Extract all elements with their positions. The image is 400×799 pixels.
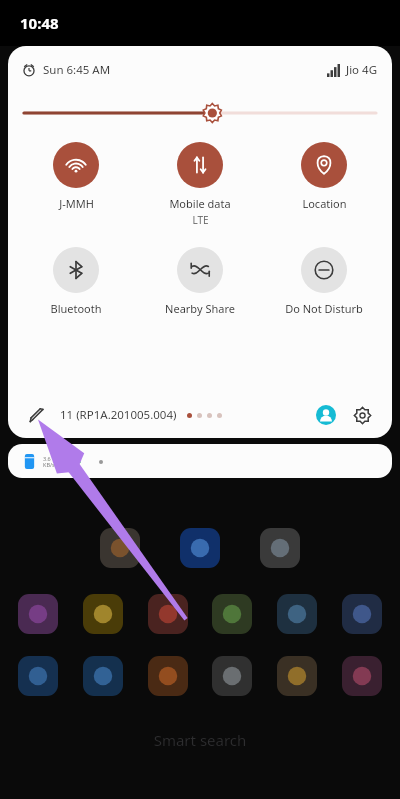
button[interactable]: Sun 6:45 AM: [22, 62, 111, 78]
button[interactable]: App: [212, 656, 252, 696]
button[interactable]: App: [18, 656, 58, 696]
button[interactable]: App: [277, 656, 317, 696]
button[interactable]: 3.6 KB/s: [8, 444, 392, 478]
button[interactable]: App: [83, 594, 123, 634]
button[interactable]: Nearby Share: [138, 243, 262, 320]
staticText: Mobile data: [169, 196, 231, 211]
button[interactable]: App: [83, 656, 123, 696]
button[interactable]: J-MMH: [14, 138, 138, 215]
staticText: Do Not Disturb: [285, 301, 363, 316]
button[interactable]: Settings: [348, 401, 376, 429]
staticText: Nearby Share: [165, 301, 235, 316]
button[interactable]: Location: [262, 138, 386, 215]
button[interactable]: App: [18, 594, 58, 634]
button[interactable]: App: [100, 528, 140, 568]
staticText: Sun 6:45 AM: [43, 62, 111, 78]
button[interactable]: App: [148, 656, 188, 696]
staticText: 10:48: [20, 13, 59, 33]
staticText: Jio 4G: [346, 62, 378, 78]
button[interactable]: Bluetooth: [14, 243, 138, 320]
button[interactable]: Do Not Disturb: [262, 243, 386, 320]
button[interactable]: User account: [312, 401, 340, 429]
staticText: 11 (RP1A.201005.004): [60, 407, 177, 423]
button[interactable]: App: [277, 594, 317, 634]
button[interactable]: Mobile data: [138, 138, 262, 231]
button[interactable]: App: [180, 528, 220, 568]
staticText: J-MMH: [59, 196, 94, 211]
staticText: Smart search: [0, 730, 400, 750]
button[interactable]: App: [342, 656, 382, 696]
staticText: Location: [302, 196, 347, 211]
button[interactable]: Brightness: [8, 94, 392, 132]
button[interactable]: App: [148, 594, 188, 634]
button[interactable]: App: [260, 528, 300, 568]
button[interactable]: App: [342, 594, 382, 634]
staticText: 3.6 KB/s: [43, 455, 55, 468]
staticText: Bluetooth: [50, 301, 102, 316]
staticText: LTE: [192, 213, 209, 227]
button[interactable]: App: [212, 594, 252, 634]
button[interactable]: Edit tiles: [24, 402, 50, 428]
